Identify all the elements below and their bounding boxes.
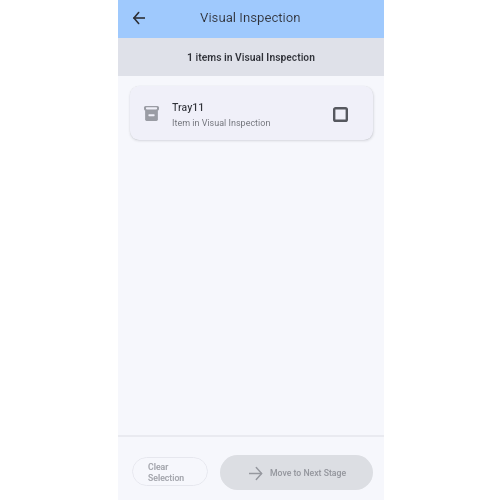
staticText: Item in Visual Inspection [172,118,271,129]
button[interactable]: Select item [329,103,351,125]
staticText: Clear Selection [148,462,185,483]
staticText: Visual Inspection [200,10,301,25]
staticText: 1 items in Visual Inspection [187,51,315,63]
staticText: Tray11 [172,101,205,113]
button[interactable]: Tray11 [130,86,373,140]
button[interactable]: Clear Selection [132,457,208,486]
staticText: Move to Next Stage [270,468,347,478]
button[interactable]: Back [122,1,155,34]
button[interactable]: Move to Next Stage [220,455,373,490]
